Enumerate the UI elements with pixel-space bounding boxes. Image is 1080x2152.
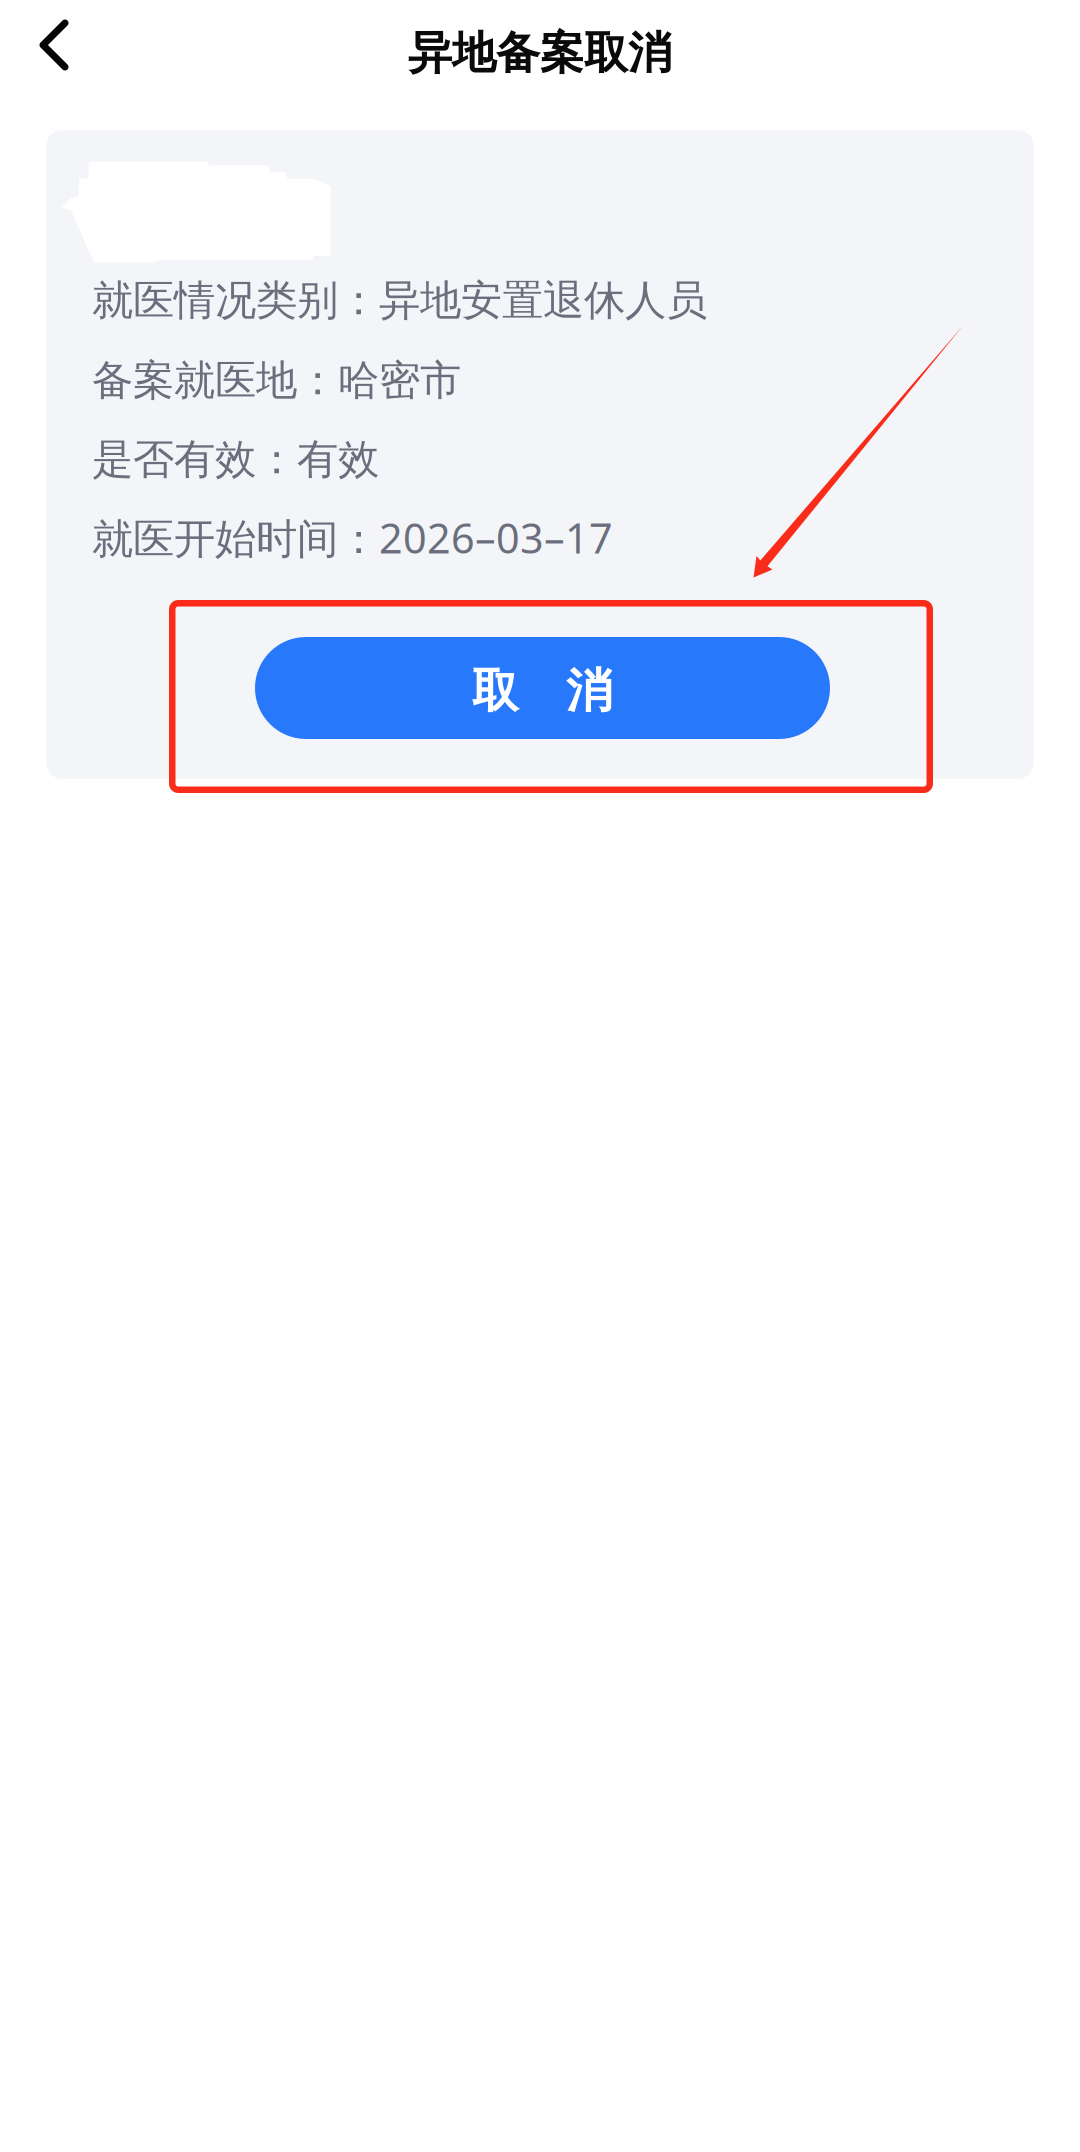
staticText: 备案就医地：哈密市: [92, 355, 461, 406]
staticText: 异地备案取消: [408, 26, 672, 80]
button[interactable]: 取 消: [255, 637, 830, 739]
button[interactable]: 返回: [0, 0, 104, 100]
staticText: 就医情况类别：异地安置退休人员: [92, 275, 707, 326]
staticText: 就医开始时间：2026–03–17: [92, 510, 613, 565]
staticText: 是否有效：有效: [92, 434, 379, 485]
staticText: 取 消: [472, 662, 613, 720]
